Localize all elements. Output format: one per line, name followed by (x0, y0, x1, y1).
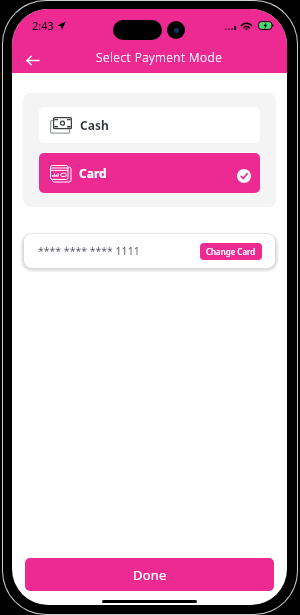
button[interactable]: Done (25, 558, 274, 591)
button[interactable]: Change Card (200, 243, 262, 260)
button[interactable]: Card (39, 153, 260, 193)
staticText: Card (79, 165, 107, 181)
staticText: Cash (80, 117, 109, 133)
staticText: Select Payment Mode (96, 49, 223, 65)
staticText: 2:43 (32, 18, 54, 33)
button[interactable]: Back (20, 48, 44, 72)
staticText: Change Card (206, 246, 256, 257)
staticText: Done (133, 566, 167, 584)
button[interactable]: Cash (39, 107, 260, 143)
staticText: **** **** **** 1111 (38, 244, 140, 258)
